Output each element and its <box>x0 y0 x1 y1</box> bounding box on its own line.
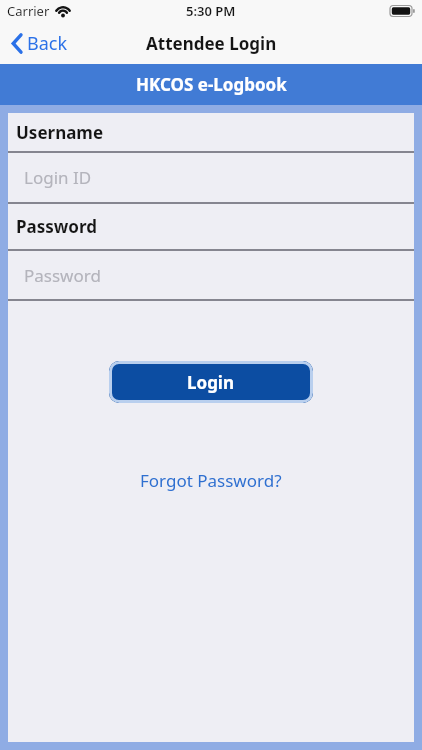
staticText: Back <box>27 31 68 56</box>
staticText: Carrier <box>7 2 50 20</box>
button[interactable]: Password <box>8 251 414 299</box>
staticText: Password <box>16 215 97 238</box>
button[interactable]: Forgot Password? <box>136 465 286 496</box>
staticText: Username <box>16 121 104 144</box>
staticText: Attendee Login <box>146 32 277 55</box>
staticText: 5:30 PM <box>186 2 236 20</box>
button[interactable]: Back <box>11 31 68 56</box>
staticText: Forgot Password? <box>140 469 282 492</box>
button[interactable]: Login ID <box>8 153 414 202</box>
staticText: HKCOS e-Logbook <box>136 73 287 96</box>
button[interactable]: Login <box>109 361 313 403</box>
staticText: Password <box>24 264 101 287</box>
staticText: Login ID <box>24 166 92 189</box>
staticText: Login <box>187 371 235 394</box>
